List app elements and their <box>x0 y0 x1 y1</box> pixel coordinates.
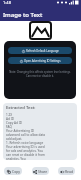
button[interactable]: Open Advertising ID Settings <box>8 57 72 64</box>
staticText: can reset or disable it from <box>6 153 45 157</box>
staticText: 1:48 <box>3 0 11 5</box>
staticText: Note: Changing this affects system level… <box>8 70 72 78</box>
button[interactable]: Share <box>32 167 49 175</box>
staticText: Copy Ad ID <box>6 121 23 125</box>
staticText: for ads and analytics. You <box>6 149 43 153</box>
staticText: Read <box>65 169 74 174</box>
staticText: Your Advertising ID <box>6 129 35 133</box>
staticText: Share <box>38 169 48 174</box>
staticText: Refresh Default Language <box>26 49 59 53</box>
staticText: Copy <box>12 169 20 174</box>
button[interactable]: Copy <box>4 167 22 175</box>
staticText: advanced call to allow data <box>6 133 46 137</box>
staticText: Your advertising ID is used <box>6 145 45 149</box>
staticText: Image to Text <box>3 11 43 19</box>
staticText: 1.2X <box>6 113 13 117</box>
button[interactable]: Refresh Default Language <box>8 47 72 54</box>
button[interactable]: Read <box>58 167 75 175</box>
staticText: Open Advertising ID Settings <box>24 59 61 63</box>
staticText: Extracted Text: <box>6 105 36 111</box>
staticText: add adjust. <box>6 137 23 141</box>
staticText: Ad ID <box>6 117 14 121</box>
staticText: FAQ <box>6 125 12 129</box>
staticText: 1. Refresh voice language <box>6 141 44 145</box>
staticText: analytics. You <box>6 157 26 160</box>
